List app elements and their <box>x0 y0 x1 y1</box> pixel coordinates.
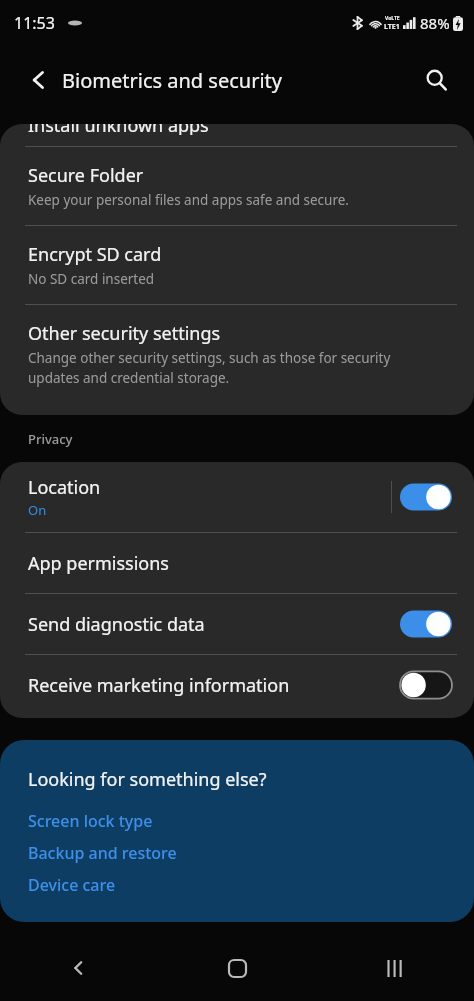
staticText: Send diagnostic data <box>28 612 205 637</box>
staticText: 11:53 <box>14 12 55 34</box>
staticText: Location <box>28 475 101 500</box>
button[interactable]: Screen lock type <box>28 810 153 832</box>
staticText: LTE1 <box>384 22 400 32</box>
staticText: Biometrics and security <box>62 67 282 94</box>
staticText: 88% <box>420 13 450 33</box>
staticText: Looking for something else? <box>28 767 267 792</box>
staticText: Change other security settings, such as … <box>28 349 391 387</box>
button[interactable]: Back <box>0 935 158 1001</box>
staticText: Other security settings <box>28 321 221 346</box>
staticText: App permissions <box>28 551 169 576</box>
button[interactable]: Navigate up <box>18 59 60 101</box>
button[interactable]: Home <box>158 935 316 1001</box>
button[interactable]: Recent apps <box>316 935 474 1001</box>
button[interactable]: Secure Folder <box>0 147 474 225</box>
button[interactable]: Receive marketing information switch <box>400 669 452 701</box>
staticText: Privacy <box>28 430 73 448</box>
staticText: Keep your personal files and apps safe a… <box>28 191 349 209</box>
staticText: Receive marketing information <box>28 673 290 698</box>
button[interactable]: Search <box>414 58 458 102</box>
button[interactable]: Send diagnostic data <box>0 594 474 654</box>
button[interactable]: Location switch <box>400 481 452 513</box>
button[interactable]: Backup and restore <box>28 842 177 864</box>
button[interactable]: Location <box>0 462 474 532</box>
button[interactable]: Install unknown apps <box>0 124 474 146</box>
staticText: Encrypt SD card <box>28 242 162 267</box>
staticText: VoLTE <box>385 15 400 22</box>
button[interactable]: Send diagnostic data switch <box>400 608 452 640</box>
button[interactable]: Other security settings <box>0 305 474 403</box>
staticText: Secure Folder <box>28 163 144 188</box>
staticText: Backup and restore <box>28 842 177 864</box>
button[interactable]: Device care <box>28 874 116 896</box>
staticText: Screen lock type <box>28 810 153 832</box>
button[interactable]: App permissions <box>0 533 474 593</box>
staticText: Install unknown apps <box>28 124 209 135</box>
staticText: Device care <box>28 874 116 896</box>
button[interactable]: Receive marketing information <box>0 655 474 715</box>
staticText: No SD card inserted <box>28 270 155 288</box>
staticText: On <box>28 501 47 519</box>
button[interactable]: Encrypt SD card <box>0 226 474 304</box>
